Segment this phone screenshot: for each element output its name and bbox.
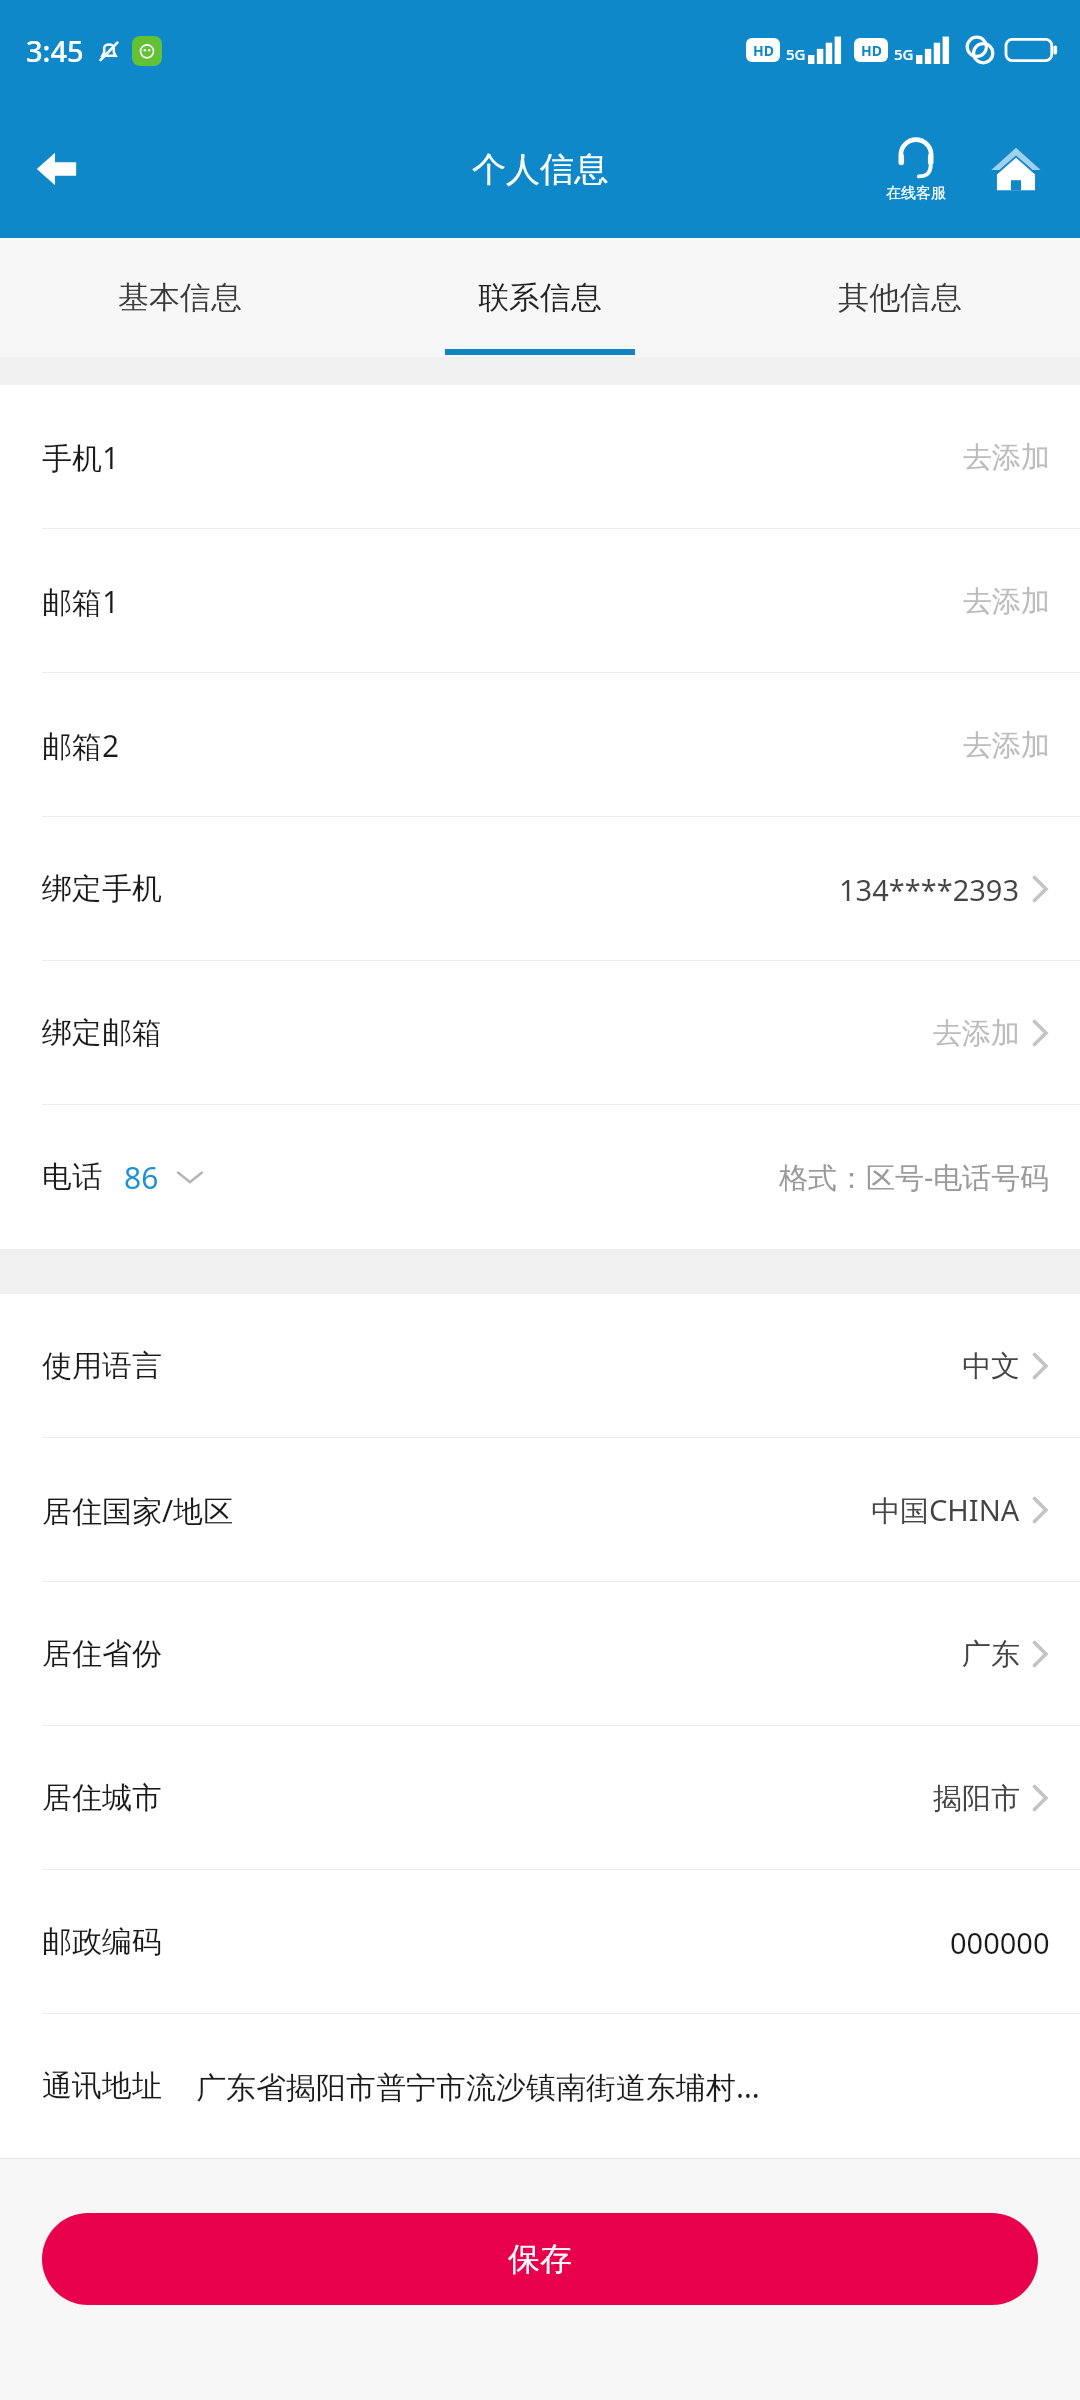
staticText: 广东 — [962, 1636, 1020, 1673]
staticText: 联系信息 — [478, 278, 602, 317]
button[interactable]: 居住省份 — [0, 1582, 1080, 1726]
button[interactable]: 通讯地址 — [0, 2014, 1080, 2158]
staticText: 3:45 — [26, 31, 84, 70]
button[interactable]: Back — [14, 127, 98, 211]
staticText: 个人信息 — [472, 148, 608, 191]
button[interactable]: 在线客服 — [868, 114, 964, 224]
staticText: 去添加 — [963, 727, 1050, 764]
button[interactable]: 居住国家/地区 — [0, 1438, 1080, 1582]
staticText: 其他信息 — [838, 278, 962, 317]
staticText: 去添加 — [963, 439, 1050, 476]
staticText: HD — [753, 41, 774, 60]
button[interactable]: 联系信息 — [360, 238, 720, 357]
staticText: 邮箱1 — [42, 581, 120, 622]
staticText: 通讯地址 — [42, 2067, 162, 2105]
button[interactable]: Home — [968, 121, 1064, 217]
button[interactable]: 绑定手机 — [0, 817, 1080, 961]
staticText: 中国CHINA — [871, 1490, 1020, 1530]
staticText: 保存 — [508, 2239, 572, 2279]
staticText: 手机1 — [42, 437, 120, 478]
staticText: 去添加 — [963, 583, 1050, 620]
button[interactable]: 手机1 — [0, 385, 1080, 529]
staticText: 居住国家/地区 — [42, 1490, 234, 1531]
staticText: 000000 — [950, 1923, 1050, 1962]
staticText: 使用语言 — [42, 1347, 162, 1385]
button[interactable]: 其他信息 — [720, 238, 1080, 357]
staticText: 电话 — [42, 1158, 102, 1196]
button[interactable]: 邮箱1 — [0, 529, 1080, 673]
staticText: 在线客服 — [886, 184, 946, 203]
button[interactable]: 居住城市 — [0, 1726, 1080, 1870]
staticText: 邮政编码 — [42, 1923, 162, 1961]
staticText: 86 — [124, 1157, 159, 1198]
staticText: 5G — [786, 44, 806, 64]
staticText: 134****2393 — [839, 870, 1020, 909]
staticText: HD — [861, 41, 882, 60]
staticText: 绑定邮箱 — [42, 1014, 162, 1052]
button[interactable]: 使用语言 — [0, 1294, 1080, 1438]
button[interactable]: 邮箱2 — [0, 673, 1080, 817]
staticText: 去添加 — [933, 1015, 1020, 1052]
staticText: 格式：区号-电话号码 — [779, 1157, 1050, 1197]
staticText: 基本信息 — [118, 278, 242, 317]
button[interactable]: 保存 — [42, 2213, 1038, 2305]
staticText: 广东省揭阳市普宁市流沙镇南街道东埔村… — [196, 2066, 1050, 2107]
staticText: 绑定手机 — [42, 870, 162, 908]
button[interactable]: 绑定邮箱 — [0, 961, 1080, 1105]
staticText: 邮箱2 — [42, 725, 120, 766]
staticText: 中文 — [962, 1348, 1020, 1385]
button[interactable]: 电话 — [0, 1105, 1080, 1249]
staticText: 居住城市 — [42, 1779, 162, 1817]
staticText: 居住省份 — [42, 1635, 162, 1673]
staticText: 5G — [894, 44, 914, 64]
button[interactable]: 邮政编码 — [0, 1870, 1080, 2014]
staticText: 揭阳市 — [933, 1780, 1020, 1817]
button[interactable]: 基本信息 — [0, 238, 360, 357]
